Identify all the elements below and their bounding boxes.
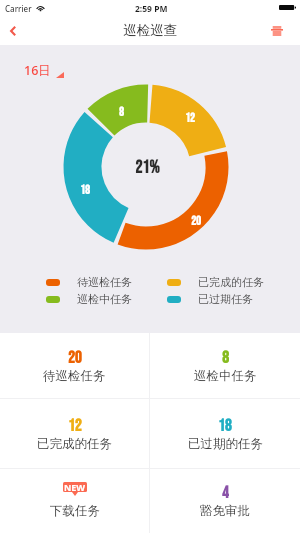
staticText: 20 xyxy=(68,348,82,364)
button[interactable]: 20 xyxy=(0,333,149,398)
button[interactable]: 16日 xyxy=(24,62,64,79)
button[interactable]: 4 xyxy=(150,469,300,533)
staticText: NEW xyxy=(64,481,86,493)
button[interactable]: Back xyxy=(0,16,30,45)
staticText: 巡检中任务 xyxy=(77,292,132,306)
staticText: 下载任务 xyxy=(50,503,100,519)
staticText: 已过期的任务 xyxy=(188,436,263,452)
staticText: 4 xyxy=(222,483,229,499)
staticText: 18 xyxy=(218,416,232,432)
button[interactable]: NEW xyxy=(0,469,149,533)
staticText: 8 xyxy=(119,105,124,119)
button[interactable]: 待巡检任务 xyxy=(46,275,132,289)
staticText: 2:59 PM xyxy=(135,3,168,15)
staticText: 已完成的任务 xyxy=(198,275,264,289)
staticText: 巡检中任务 xyxy=(194,368,257,384)
staticText: 豁免审批 xyxy=(200,503,250,519)
button[interactable]: 12 xyxy=(0,399,149,468)
staticText: 8 xyxy=(222,348,229,364)
button[interactable]: 巡检中任务 xyxy=(46,292,132,306)
staticText: 待巡检任务 xyxy=(43,368,106,384)
button[interactable]: 8 xyxy=(150,333,300,398)
staticText: Carrier xyxy=(5,3,32,14)
staticText: 12 xyxy=(185,111,195,125)
staticText: 已过期任务 xyxy=(198,292,253,306)
staticText: 18 xyxy=(80,183,90,197)
staticText: 巡检巡查 xyxy=(123,22,177,39)
staticText: 12 xyxy=(68,416,82,432)
staticText: 20 xyxy=(191,214,201,228)
button[interactable]: 18 xyxy=(150,399,300,468)
staticText: 已完成的任务 xyxy=(37,436,112,452)
staticText: 待巡检任务 xyxy=(77,275,132,289)
button[interactable]: 已完成的任务 xyxy=(167,275,264,289)
button[interactable]: 已过期任务 xyxy=(167,292,253,306)
button[interactable]: Menu xyxy=(262,16,300,45)
staticText: 16日 xyxy=(24,62,51,79)
staticText: 21% xyxy=(135,157,160,178)
